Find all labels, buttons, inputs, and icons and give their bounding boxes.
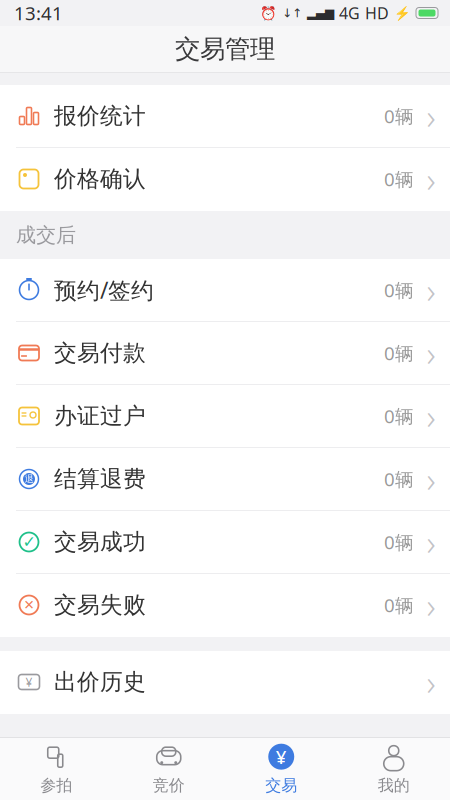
staticText: ▂▄▆: [307, 6, 334, 20]
staticText: ✓: [22, 533, 35, 551]
staticText: 出价历史: [54, 668, 146, 696]
staticText: 竞价: [153, 776, 185, 795]
staticText: ↓↑: [282, 6, 302, 20]
staticText: 0辆: [384, 593, 414, 617]
staticText: 0辆: [384, 278, 414, 302]
staticText: 交易: [265, 776, 297, 795]
staticText: 交易成功: [54, 528, 146, 556]
button[interactable]: 办证过户: [0, 385, 450, 448]
staticText: 0辆: [384, 404, 414, 428]
staticText: 成交后: [16, 223, 76, 247]
staticText: 交易付款: [54, 339, 146, 367]
staticText: ›: [426, 93, 435, 139]
button[interactable]: 我的: [337, 738, 450, 800]
button[interactable]: 退: [0, 448, 450, 511]
staticText: 退: [24, 473, 33, 485]
button[interactable]: 报价统计: [0, 85, 450, 148]
staticText: ⚡: [394, 5, 411, 21]
staticText: 0辆: [384, 167, 414, 191]
button[interactable]: 交易付款: [0, 322, 450, 385]
button[interactable]: 价格确认: [0, 148, 450, 211]
staticText: 交易失败: [54, 591, 146, 619]
staticText: ›: [426, 519, 435, 565]
staticText: ✕: [23, 597, 34, 612]
staticText: ¥: [25, 674, 32, 690]
staticText: ›: [426, 456, 435, 502]
staticText: 0辆: [384, 341, 414, 365]
staticText: ›: [426, 267, 435, 313]
staticText: ¥: [276, 744, 287, 769]
staticText: 我的: [378, 776, 410, 795]
staticText: 价格确认: [54, 165, 146, 193]
button[interactable]: ✕: [0, 574, 450, 637]
button[interactable]: 预约/签约: [0, 259, 450, 322]
button[interactable]: ¥: [0, 651, 450, 714]
staticText: 交易管理: [175, 33, 275, 64]
staticText: 4G: [339, 2, 360, 24]
staticText: ›: [426, 582, 435, 628]
staticText: 13:41: [14, 1, 63, 25]
staticText: 结算退费: [54, 465, 146, 493]
staticText: 办证过户: [54, 402, 146, 430]
staticText: 预约/签约: [54, 275, 154, 305]
staticText: ⏰: [260, 5, 277, 21]
button[interactable]: ✓: [0, 511, 450, 574]
staticText: HD: [365, 2, 389, 24]
staticText: ›: [426, 393, 435, 439]
button[interactable]: 参拍: [0, 738, 112, 800]
staticText: ›: [426, 659, 435, 705]
staticText: ›: [426, 156, 435, 202]
staticText: 0辆: [384, 467, 414, 491]
staticText: 报价统计: [54, 102, 146, 130]
staticText: 0辆: [384, 530, 414, 554]
staticText: 参拍: [40, 776, 72, 795]
button[interactable]: ¥: [225, 738, 337, 800]
button[interactable]: 竞价: [112, 738, 225, 800]
staticText: 0辆: [384, 104, 414, 128]
staticText: ›: [426, 330, 435, 376]
